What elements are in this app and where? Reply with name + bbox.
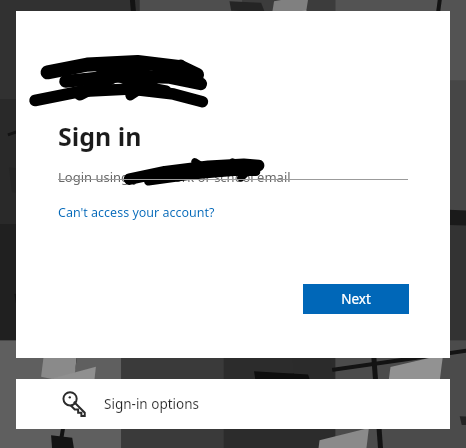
button[interactable]: Next — [303, 284, 409, 314]
button[interactable]: Can't access your account? — [58, 202, 215, 223]
staticText: Login using your work or school email — [58, 168, 291, 186]
staticText: Sign-in options — [104, 395, 200, 413]
button[interactable]: Sign-in options — [16, 379, 450, 429]
staticText: Next — [341, 290, 371, 308]
staticText: Can't access your account? — [58, 204, 215, 221]
staticText: Sign in — [58, 119, 142, 153]
